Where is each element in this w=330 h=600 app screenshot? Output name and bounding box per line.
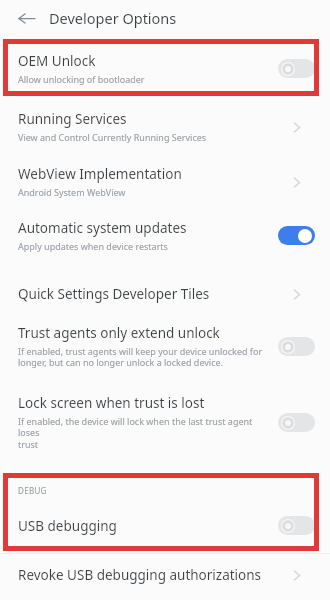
staticText: WebView Implementation: [18, 165, 182, 183]
button[interactable]: WebView Implementation: [284, 170, 308, 194]
staticText: If enabled, trust agents will keep your …: [18, 345, 263, 369]
staticText: Quick Settings Developer Tiles: [18, 285, 210, 303]
staticText: View and Control Currently Running Servi…: [18, 131, 207, 143]
staticText: Running Services: [18, 110, 127, 128]
button[interactable]: Automatic system updates: [18, 219, 318, 252]
staticText: Trust agents only extend unlock: [18, 324, 220, 342]
button[interactable]: Switch off: [278, 59, 315, 78]
staticText: Apply updates when device restarts: [18, 240, 168, 252]
button[interactable]: Quick Settings Developer Tiles: [284, 282, 308, 306]
button[interactable]: Running Services: [18, 110, 318, 143]
staticText: Developer Options: [49, 8, 177, 28]
staticText: USB debugging: [18, 517, 117, 535]
button[interactable]: Switch on: [278, 226, 315, 245]
button[interactable]: Lock screen when trust is lost: [18, 394, 318, 451]
button[interactable]: Running Services: [284, 115, 308, 139]
staticText: Automatic system updates: [18, 219, 187, 237]
staticText: If enabled, the device will lock when th…: [18, 415, 274, 451]
button[interactable]: USB debugging: [18, 516, 318, 535]
button[interactable]: Revoke USB debugging authorizations: [284, 563, 308, 587]
button[interactable]: Switch off: [278, 413, 315, 432]
staticText: DEBUG: [18, 485, 47, 496]
button[interactable]: Quick Settings Developer Tiles: [18, 282, 318, 306]
button[interactable]: Trust agents only extend unlock: [18, 324, 318, 369]
button[interactable]: Revoke USB debugging authorizations: [18, 563, 318, 587]
button[interactable]: WebView Implementation: [18, 165, 318, 198]
button[interactable]: OEM Unlock: [18, 52, 318, 85]
staticText: Allow unlocking of bootloader: [18, 73, 145, 85]
button[interactable]: Switch off: [278, 516, 315, 535]
staticText: Lock screen when trust is lost: [18, 394, 205, 412]
staticText: Revoke USB debugging authorizations: [18, 566, 262, 584]
button[interactable]: Back: [11, 3, 41, 33]
staticText: Android System WebView: [18, 186, 126, 198]
staticText: OEM Unlock: [18, 52, 96, 70]
button[interactable]: Switch off: [278, 337, 315, 356]
